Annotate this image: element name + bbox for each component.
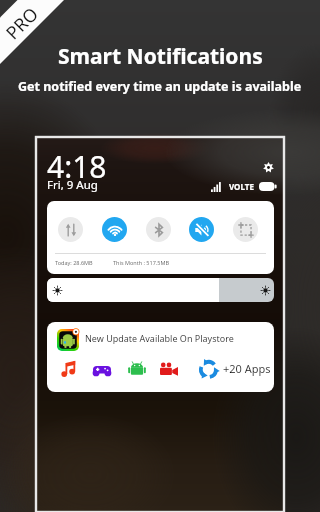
staticText: Fri, 9 Aug (47, 177, 98, 193)
button[interactable]: Screenshot (233, 217, 258, 242)
button[interactable]: Bluetooth (146, 217, 171, 242)
staticText: This Month : 517.5MB (113, 259, 169, 266)
button[interactable]: Mute (189, 217, 214, 242)
button[interactable]: Mobile data (58, 217, 83, 242)
staticText: New Update Available On Playstore (85, 332, 234, 344)
button[interactable]: Settings (263, 162, 274, 173)
button[interactable]: Wi-Fi (102, 217, 127, 242)
staticText: 4:18 (47, 146, 107, 187)
button[interactable]: Brightness (47, 278, 274, 302)
staticText: PRO (0, 1, 44, 45)
staticText: Smart Notifications (58, 42, 263, 71)
staticText: +20 Apps (223, 361, 271, 376)
staticText: VOLTE (229, 181, 254, 192)
staticText: Today: 28.6MB (55, 259, 93, 266)
button[interactable]: New Update Available On Playstore (47, 322, 274, 392)
staticText: Get notified every time an update is ava… (18, 78, 302, 95)
